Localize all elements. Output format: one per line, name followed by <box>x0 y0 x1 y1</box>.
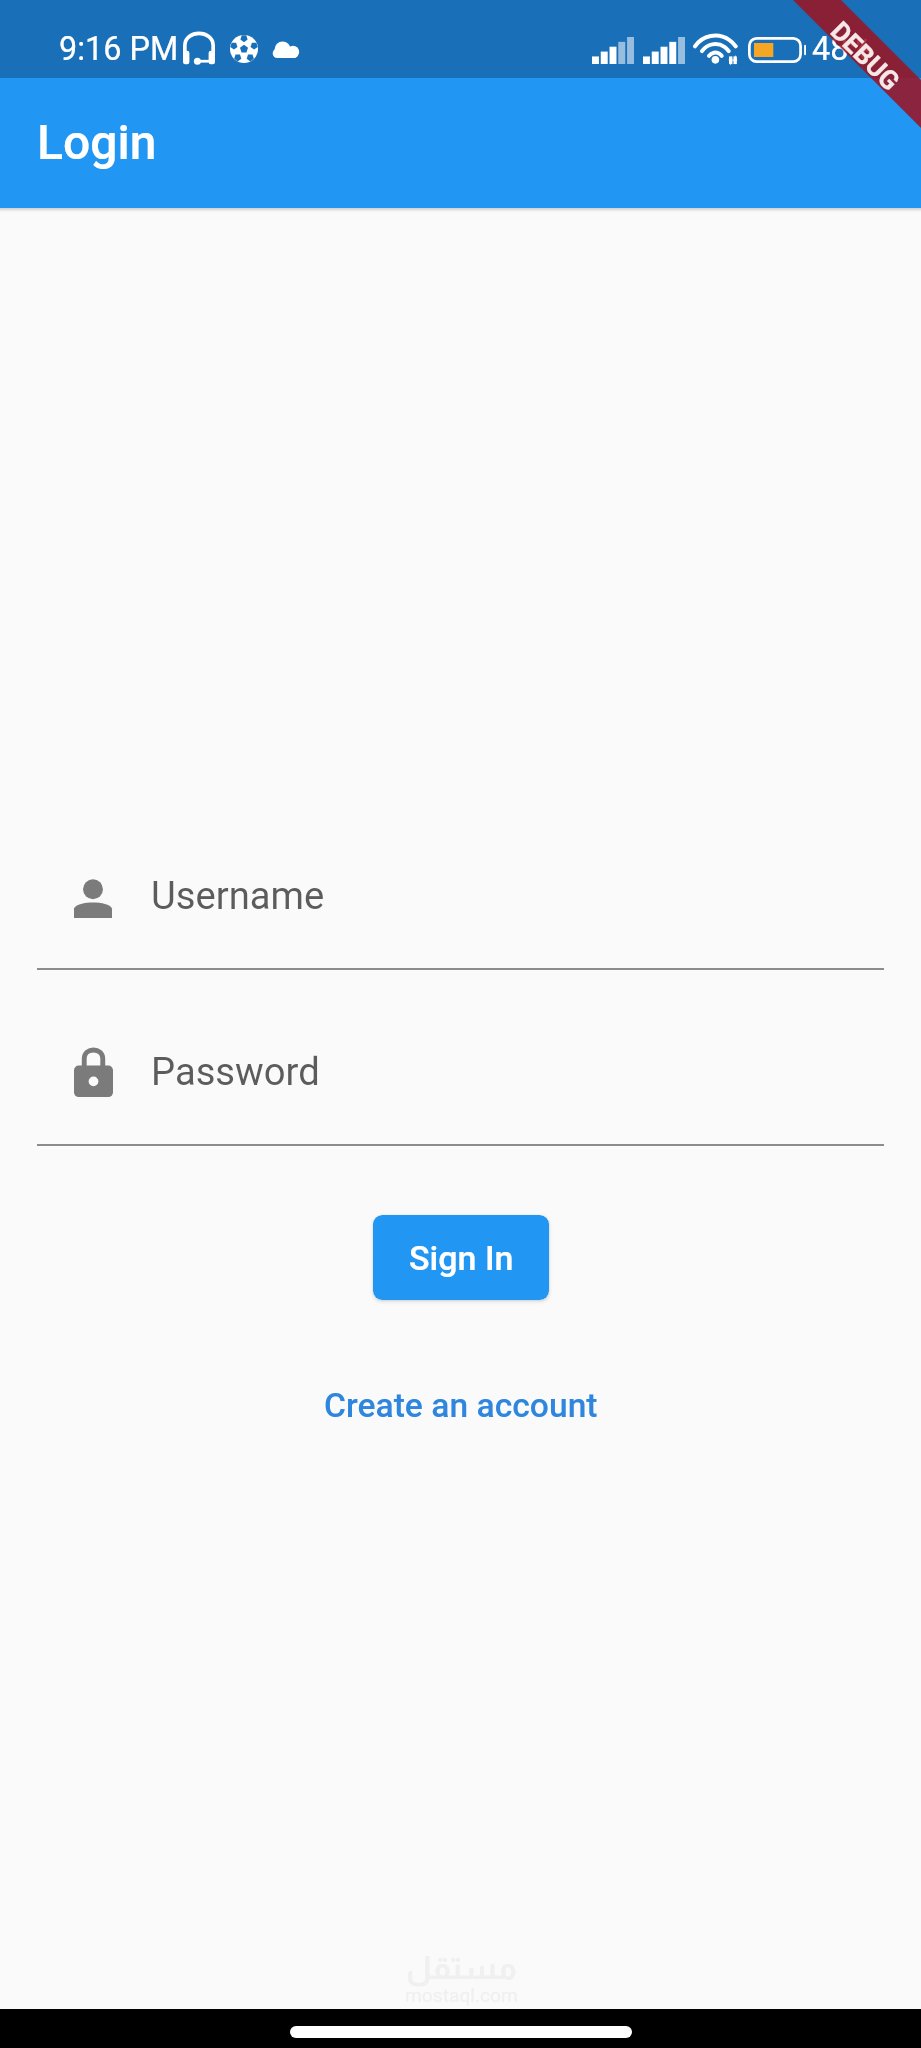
button[interactable]: Sign In <box>373 1215 549 1300</box>
staticText: 48% <box>812 30 873 68</box>
staticText: DEBUG <box>824 16 906 98</box>
button[interactable]: Create an account <box>294 1372 628 1439</box>
staticText: Create an account <box>324 1386 598 1425</box>
staticText: مستقل <box>406 1950 517 1985</box>
staticText: Login <box>37 114 157 170</box>
staticText: mostaql.com <box>405 1984 518 2007</box>
other: Password <box>74 1049 113 1097</box>
staticText: 9:16 PM <box>59 30 179 68</box>
staticText: Password <box>151 1050 320 1095</box>
other: Username <box>74 879 112 918</box>
staticText: Username <box>151 874 325 919</box>
staticText: Sign In <box>409 1238 514 1278</box>
